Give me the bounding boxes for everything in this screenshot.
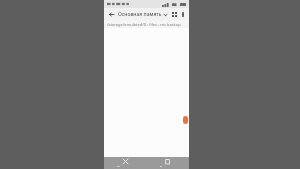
button[interactable]: Back xyxy=(106,9,116,19)
button[interactable]: Cancel xyxy=(104,157,146,169)
button[interactable]: More options xyxy=(179,10,187,18)
button[interactable]: /storage/emulated/0 › files › mc.backup xyxy=(104,20,189,28)
button[interactable]: Основная память xyxy=(118,11,169,18)
staticText: Отменить xyxy=(117,165,134,167)
staticText: Основная память xyxy=(118,11,162,18)
other: Cancel xyxy=(123,159,128,164)
button[interactable]: View mode xyxy=(169,9,179,19)
staticText: Вставить xyxy=(160,165,176,167)
button[interactable]: Fast scroll xyxy=(183,116,188,124)
staticText: /storage/emulated/0 › files › mc.backup xyxy=(107,22,181,27)
other: Paste xyxy=(165,159,170,164)
button[interactable]: Paste xyxy=(146,157,189,169)
